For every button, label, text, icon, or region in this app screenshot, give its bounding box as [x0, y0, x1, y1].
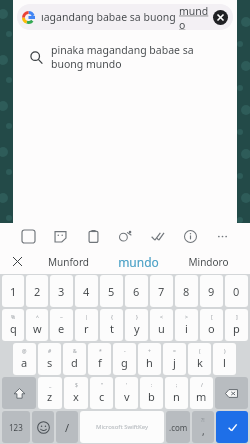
button[interactable]: ) [213, 343, 236, 375]
button[interactable]: | [75, 309, 98, 341]
button[interactable]: ?! [192, 411, 214, 443]
staticText: mundo [179, 4, 209, 30]
staticText: % [11, 314, 16, 321]
button[interactable]: 3 [50, 275, 73, 307]
staticText: _ [49, 382, 52, 389]
button[interactable]: - [113, 343, 136, 375]
staticText: 123 [9, 422, 23, 433]
button[interactable]: ' [115, 377, 138, 409]
button[interactable]: 0 [225, 275, 248, 307]
button[interactable]: Mindoro [174, 249, 242, 274]
staticText: / [65, 420, 70, 435]
staticText: , [202, 424, 205, 438]
staticText: 9 [208, 284, 215, 299]
button[interactable]: ^ [26, 309, 48, 341]
button[interactable]: 1 [2, 275, 24, 307]
button[interactable]: / [190, 377, 213, 409]
staticText: g [121, 355, 128, 370]
button[interactable]: Expand [0, 249, 34, 274]
button[interactable]: @ [13, 343, 36, 375]
button[interactable]: % [2, 309, 24, 341]
staticText: ^ [36, 314, 39, 321]
staticText: b [148, 389, 155, 404]
button[interactable]: 4 [75, 275, 98, 307]
staticText: " [101, 382, 104, 389]
button[interactable]: ( [188, 343, 211, 375]
staticText: l [223, 355, 226, 370]
button[interactable]: # [38, 343, 61, 375]
button[interactable]: .com [166, 411, 190, 443]
staticText: h [146, 355, 153, 370]
button[interactable]: { [100, 309, 123, 341]
button[interactable]: 7 [150, 275, 173, 307]
staticText: / [201, 382, 203, 389]
staticText: y [134, 321, 140, 336]
button[interactable]: Clipboard [83, 226, 103, 246]
button[interactable]: mundo [102, 249, 174, 274]
staticText: ' [126, 382, 128, 389]
staticText: c [99, 389, 105, 404]
staticText: > [185, 314, 188, 321]
button[interactable]: ] [225, 309, 248, 341]
button[interactable]: Translate [115, 226, 135, 246]
staticText: e [58, 321, 65, 336]
button[interactable]: Shift [2, 377, 36, 409]
button[interactable]: = [163, 343, 186, 375]
button[interactable]: 9 [200, 275, 223, 307]
staticText: Munford [48, 255, 89, 269]
button[interactable]: GIF [18, 226, 38, 246]
button[interactable]: / [56, 411, 78, 443]
staticText: a [21, 355, 28, 370]
button[interactable]: 8 [175, 275, 198, 307]
button[interactable]: [ [200, 309, 223, 341]
button[interactable]: 123 [2, 411, 30, 443]
button[interactable]: 5 [100, 275, 123, 307]
staticText: s [47, 355, 53, 370]
staticText: r [84, 321, 89, 336]
button[interactable]: ; [165, 377, 188, 409]
button[interactable]: _ [38, 377, 62, 409]
button[interactable]: : [140, 377, 163, 409]
button[interactable]: Munford [34, 249, 102, 274]
button[interactable]: Editing [147, 226, 167, 246]
button[interactable]: " [90, 377, 113, 409]
button[interactable]: More options [212, 226, 232, 246]
staticText: o [208, 321, 215, 336]
staticText: t [110, 321, 114, 336]
button[interactable]: Clear query [212, 9, 229, 26]
button[interactable]: ıagandang babae sa buong [17, 4, 233, 30]
staticText: { [111, 314, 113, 321]
staticText: $ [75, 382, 78, 389]
staticText: f [98, 355, 102, 370]
button[interactable]: > [175, 309, 198, 341]
button[interactable]: Microsoft SwiftKey [80, 411, 164, 443]
staticText: : [151, 382, 153, 389]
button[interactable]: Stickers [50, 226, 70, 246]
staticText: @ [22, 348, 27, 355]
staticText: mundo [118, 254, 159, 270]
staticText: 6 [133, 284, 140, 299]
staticText: ] [236, 314, 238, 321]
staticText: | [85, 314, 88, 321]
button[interactable]: Backspace [215, 377, 248, 409]
button[interactable]: pinaka magandang babae sa buong mundo [13, 34, 237, 80]
button[interactable]: ~ [50, 309, 73, 341]
button[interactable]: < [150, 309, 173, 341]
button[interactable]: & [63, 343, 86, 375]
button[interactable]: } [125, 309, 148, 341]
button[interactable]: + [138, 343, 161, 375]
button[interactable]: 2 [26, 275, 48, 307]
staticText: ) [224, 348, 226, 355]
button[interactable]: * [88, 343, 111, 375]
staticText: ( [199, 348, 201, 355]
button[interactable]: 6 [125, 275, 148, 307]
button[interactable]: $ [64, 377, 88, 409]
button[interactable]: Emoji [32, 411, 54, 443]
button[interactable]: Info [180, 226, 200, 246]
button[interactable]: Search [216, 411, 248, 443]
staticText: q [10, 321, 17, 336]
staticText: x [73, 389, 79, 404]
staticText: v [124, 389, 130, 404]
staticText: ?! [201, 417, 205, 424]
staticText: Microsoft SwiftKey [96, 423, 148, 431]
